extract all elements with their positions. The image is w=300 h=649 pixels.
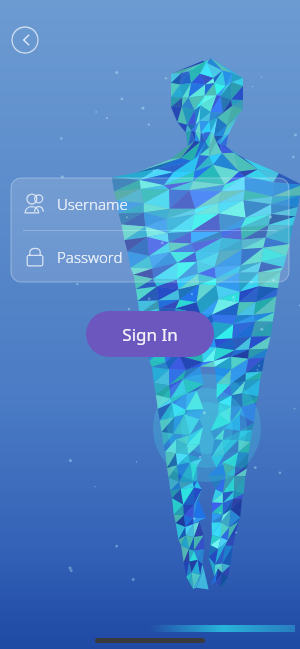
button[interactable]: Sign In [86,311,214,357]
button[interactable]: Username [11,178,289,230]
button[interactable]: Password [11,231,289,282]
button[interactable]: Back [11,26,39,54]
staticText: Password [57,247,123,267]
staticText: Sign In [122,323,178,346]
staticText: Username [57,194,128,214]
